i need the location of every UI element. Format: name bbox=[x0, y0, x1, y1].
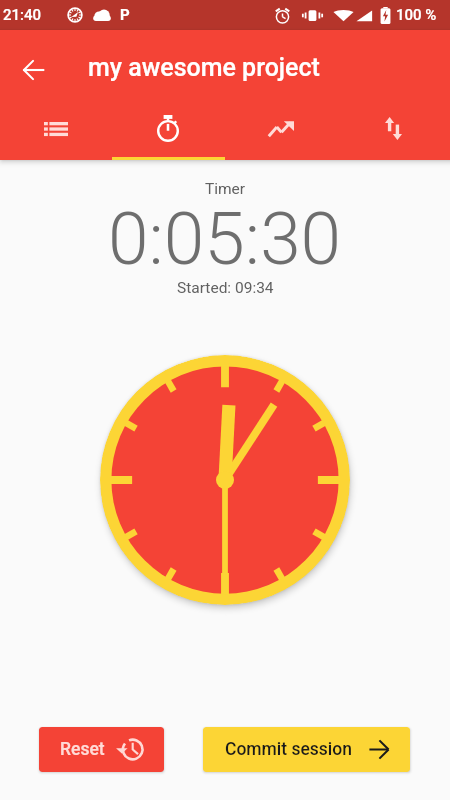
staticText: 0:05:30 bbox=[108, 196, 342, 282]
button[interactable]: Commit session bbox=[203, 727, 410, 772]
button[interactable]: Import export bbox=[337, 100, 450, 157]
button[interactable]: Reset bbox=[39, 727, 164, 772]
staticText: Commit session bbox=[225, 739, 353, 760]
staticText: Timer bbox=[205, 180, 246, 198]
button[interactable]: Statistics bbox=[224, 100, 337, 157]
staticText: Reset bbox=[60, 739, 105, 760]
button[interactable]: Back bbox=[11, 47, 57, 93]
staticText: 100 % bbox=[396, 6, 437, 24]
staticText: Started: 09:34 bbox=[177, 279, 274, 297]
button[interactable]: Timer bbox=[112, 100, 224, 157]
staticText: P bbox=[120, 6, 130, 24]
staticText: 21:40 bbox=[3, 6, 42, 24]
staticText: my awesome project bbox=[88, 53, 320, 82]
button[interactable]: Sessions bbox=[0, 100, 112, 157]
